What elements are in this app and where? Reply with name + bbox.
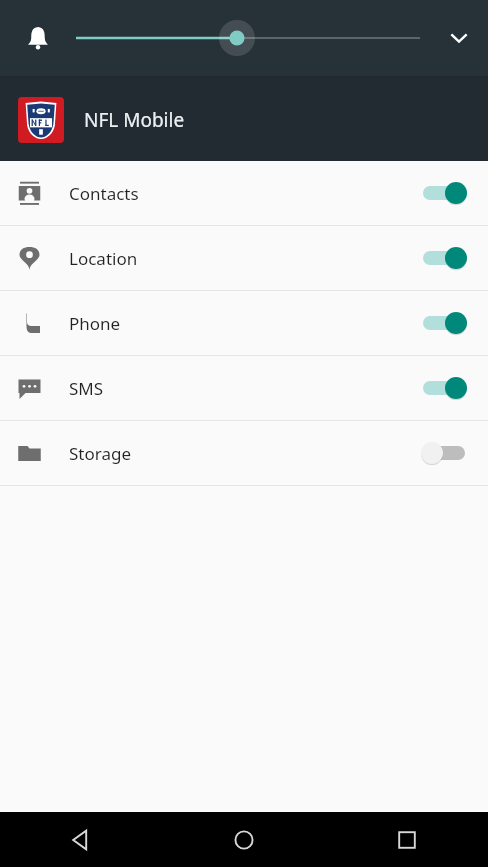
button[interactable]: Location (0, 226, 488, 290)
button[interactable]: Expand (439, 18, 479, 58)
staticText: Phone (69, 312, 422, 335)
staticText: NFL Mobile (84, 107, 185, 133)
button[interactable]: Home (162, 812, 325, 867)
button[interactable]: Notification volume (18, 18, 58, 58)
staticText: Storage (69, 442, 422, 465)
staticText: Contacts (69, 182, 422, 205)
button[interactable]: SMS (0, 356, 488, 420)
button[interactable]: Recents (325, 812, 488, 867)
button[interactable]: Back (0, 812, 162, 867)
button[interactable]: Contacts (0, 161, 488, 225)
button[interactable]: Phone (0, 291, 488, 355)
button[interactable]: NFL Mobile (0, 78, 488, 161)
button[interactable] (60, 0, 428, 76)
button[interactable]: Storage (0, 421, 488, 485)
staticText: Location (69, 247, 422, 270)
staticText: SMS (69, 377, 422, 400)
